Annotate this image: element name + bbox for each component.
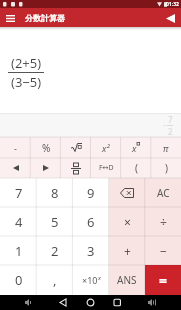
button[interactable]: ANS <box>109 265 145 295</box>
button[interactable] <box>0 158 31 178</box>
button[interactable] <box>121 295 181 310</box>
button[interactable] <box>31 158 61 178</box>
staticText: (2+5) <box>11 54 42 72</box>
staticText: + <box>124 243 131 259</box>
button[interactable]: AC <box>145 178 181 207</box>
button[interactable]: 8 <box>37 178 73 207</box>
staticText: 2 <box>51 242 59 260</box>
staticText: π <box>163 142 169 154</box>
staticText: × <box>124 214 131 230</box>
staticText: % <box>42 141 51 155</box>
staticText: - <box>14 142 17 154</box>
button[interactable]: − <box>145 236 181 265</box>
staticText: − <box>160 243 167 259</box>
button[interactable]: 4 <box>0 207 37 236</box>
button[interactable]: × <box>109 207 145 236</box>
button[interactable]: π <box>151 137 181 158</box>
staticText: F↔D <box>99 163 114 173</box>
button[interactable] <box>4 12 16 24</box>
staticText: 01:32 <box>166 1 179 8</box>
button[interactable]: 9 <box>73 178 109 207</box>
staticText: x <box>132 142 137 154</box>
staticText: 0 <box>15 271 23 289</box>
staticText: 4 <box>15 213 23 231</box>
button[interactable]: ÷ <box>145 207 181 236</box>
button[interactable] <box>61 295 121 310</box>
button[interactable]: ×10 <box>73 265 109 295</box>
button[interactable]: 3 <box>73 236 109 265</box>
staticText: 1 <box>15 242 23 260</box>
button[interactable] <box>61 137 91 158</box>
staticText: − <box>163 122 167 130</box>
button[interactable]: x <box>121 137 151 158</box>
button[interactable] <box>109 178 145 207</box>
button[interactable]: 2 <box>37 236 73 265</box>
staticText: , <box>53 271 57 289</box>
button[interactable]: 7 <box>0 178 37 207</box>
staticText: ANS <box>117 273 137 287</box>
button[interactable]: 6 <box>73 207 109 236</box>
staticText: 7 <box>15 184 23 202</box>
staticText: ( <box>135 161 138 175</box>
button[interactable]: ) <box>151 158 181 178</box>
button[interactable]: , <box>37 265 73 295</box>
staticText: = <box>159 271 168 290</box>
staticText: x² <box>102 142 110 154</box>
staticText: 分数計算器 <box>25 13 65 23</box>
staticText: 3 <box>87 242 95 260</box>
staticText: ÷ <box>160 214 167 230</box>
button[interactable] <box>164 12 176 24</box>
staticText: AC <box>157 186 170 200</box>
button[interactable]: 0 <box>0 265 37 295</box>
staticText: (3−5) <box>11 73 42 91</box>
staticText: 9 <box>87 184 95 202</box>
button[interactable]: + <box>109 236 145 265</box>
staticText: 8 <box>51 184 59 202</box>
button[interactable]: x² <box>91 137 121 158</box>
button[interactable] <box>61 158 91 178</box>
staticText: 7 <box>168 114 173 125</box>
button[interactable] <box>0 295 61 310</box>
staticText: x <box>98 274 101 282</box>
staticText: 5 <box>51 213 59 231</box>
button[interactable]: = <box>145 265 181 295</box>
button[interactable]: 1 <box>0 236 37 265</box>
staticText: 2 <box>168 126 173 137</box>
button[interactable]: 5 <box>37 207 73 236</box>
staticText: 6 <box>87 213 95 231</box>
button[interactable]: ( <box>121 158 151 178</box>
button[interactable]: F↔D <box>91 158 121 178</box>
button[interactable]: % <box>31 137 61 158</box>
staticText: ) <box>165 161 168 175</box>
button[interactable]: - <box>0 137 31 158</box>
staticText: ×10 <box>82 274 98 286</box>
